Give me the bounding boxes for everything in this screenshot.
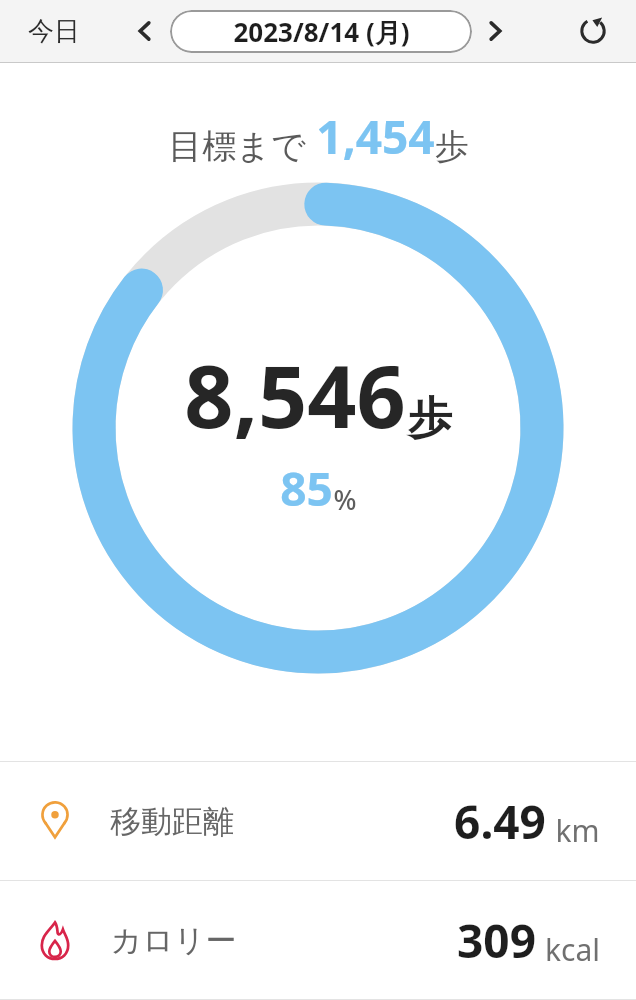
staticText: 85	[280, 457, 333, 520]
staticText: 移動距離	[110, 802, 234, 841]
button[interactable]: 2023/8/14 (月)	[170, 10, 472, 53]
staticText: 2023/8/14 (月)	[233, 14, 410, 50]
button[interactable]: 移動距離	[0, 762, 636, 880]
button[interactable]: Refresh	[570, 8, 616, 54]
staticText: 1,454	[316, 105, 435, 168]
staticText: %	[333, 481, 357, 518]
button[interactable]: カロリー	[0, 881, 636, 999]
staticText: 309	[457, 909, 536, 972]
staticText: 目標まで	[168, 125, 306, 168]
staticText: 6.49	[454, 790, 546, 853]
staticText: km	[555, 810, 600, 851]
staticText: 歩	[408, 391, 452, 446]
staticText: 8,546	[184, 336, 406, 453]
staticText: 歩	[435, 125, 469, 168]
staticText: カロリー	[110, 921, 237, 960]
button[interactable]: Next day	[478, 14, 512, 48]
staticText: kcal	[545, 929, 600, 970]
staticText: 今日	[28, 15, 80, 48]
button[interactable]: Previous day	[128, 14, 162, 48]
button[interactable]: 今日	[26, 11, 82, 52]
